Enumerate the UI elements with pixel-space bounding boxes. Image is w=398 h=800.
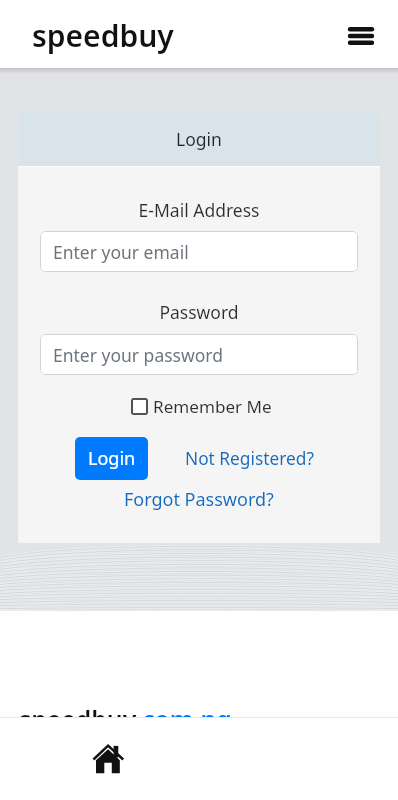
staticText: speedbuy.com.ng	[19, 702, 232, 736]
staticText: Enter your password	[53, 343, 223, 367]
button[interactable]: Login	[75, 437, 148, 480]
button[interactable]: Forgot Password?	[118, 481, 280, 518]
staticText: Forgot Password?	[124, 487, 274, 512]
staticText: Login	[88, 446, 136, 471]
staticText: Enter your email	[53, 240, 189, 264]
staticText: Password	[18, 300, 380, 324]
button[interactable]: Not Registered?	[179, 441, 320, 477]
staticText: Remember Me	[153, 395, 272, 418]
button[interactable]: Remember Me	[127, 391, 276, 422]
staticText: Not Registered?	[185, 447, 314, 471]
button[interactable]: Home	[86, 737, 130, 781]
button[interactable]: Menu	[343, 18, 379, 54]
button[interactable]: Enter your password	[40, 334, 358, 375]
staticText: E-Mail Address	[18, 198, 380, 222]
staticText: Login	[176, 127, 222, 151]
button[interactable]: Enter your email	[40, 231, 358, 272]
staticText: speedbuy	[32, 15, 174, 56]
